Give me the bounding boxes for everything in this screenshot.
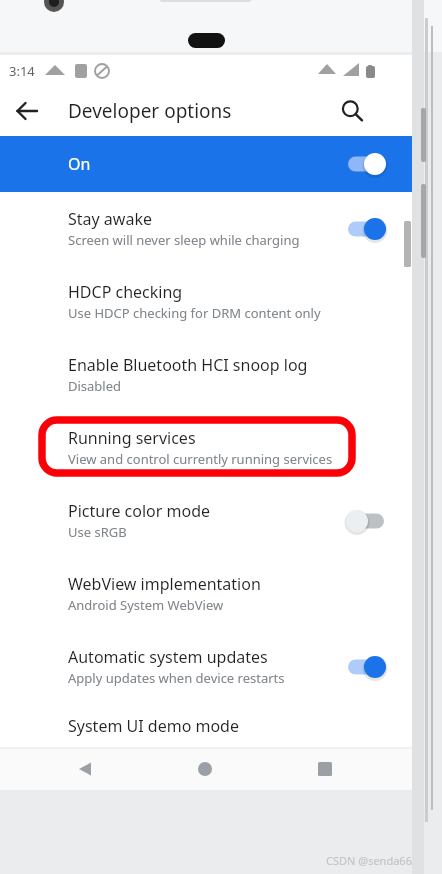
staticText: Running services (68, 427, 196, 449)
button[interactable]: WebView implementation (0, 557, 412, 630)
staticText: Picture color mode (68, 500, 211, 522)
staticText: Use sRGB (68, 523, 127, 541)
staticText: HDCP checking (68, 281, 183, 303)
button[interactable]: Back (62, 748, 108, 790)
staticText: 3:14 (9, 62, 35, 80)
button[interactable]: System UI demo mode (0, 703, 412, 748)
button[interactable]: Running services (0, 411, 412, 484)
staticText: Screen will never sleep while charging (68, 231, 300, 249)
button[interactable]: Enable Bluetooth HCI snoop log (0, 338, 412, 411)
button[interactable]: Automatic system updates (0, 630, 412, 703)
button[interactable]: Picture color mode (0, 484, 412, 557)
staticText: Automatic system updates (68, 646, 268, 668)
staticText: Android System WebView (68, 596, 224, 614)
staticText: CSDN @senda66 (326, 853, 412, 868)
button[interactable]: Stay awake (0, 192, 412, 265)
button[interactable]: Recents (302, 748, 348, 790)
button[interactable]: Back (3, 87, 51, 135)
button[interactable]: On (0, 136, 412, 192)
staticText: Stay awake (68, 208, 152, 230)
button[interactable]: Search (328, 87, 376, 135)
staticText: System UI demo mode (68, 715, 239, 737)
staticText: Enable Bluetooth HCI snoop log (68, 354, 308, 376)
staticText: Apply updates when device restarts (68, 669, 285, 687)
button[interactable]: Home (182, 748, 228, 790)
staticText: View and control currently running servi… (68, 450, 333, 468)
staticText: Disabled (68, 377, 122, 395)
staticText: WebView implementation (68, 573, 261, 595)
staticText: Use HDCP checking for DRM content only (68, 304, 321, 322)
button[interactable]: HDCP checking (0, 265, 412, 338)
staticText: Developer options (68, 98, 232, 124)
staticText: On (68, 153, 91, 175)
